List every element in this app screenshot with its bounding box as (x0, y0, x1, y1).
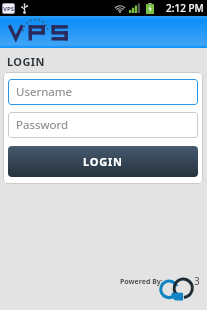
button[interactable]: Password (8, 112, 198, 138)
other: VPS (7, 19, 71, 45)
staticText: Powered By: (120, 277, 163, 287)
button[interactable]: Username (8, 79, 198, 105)
staticText: 2:12 PM (166, 1, 204, 15)
staticText: VPS (3, 5, 14, 13)
staticText: 3 (194, 274, 200, 288)
button[interactable]: LOGIN (8, 146, 198, 177)
staticText: LOGIN (7, 54, 45, 69)
staticText: Password (16, 117, 69, 133)
staticText: LOGIN (83, 154, 123, 169)
staticText: Username (16, 84, 72, 100)
